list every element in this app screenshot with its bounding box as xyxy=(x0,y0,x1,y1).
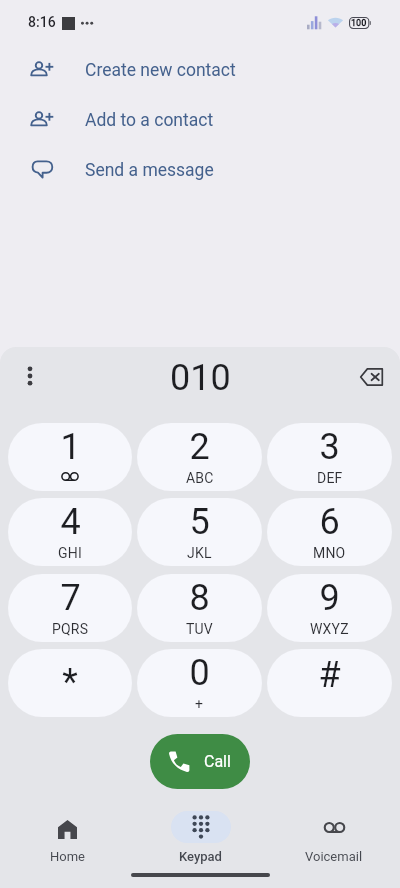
button[interactable]: 6 xyxy=(267,498,392,566)
staticText: 3 xyxy=(319,426,340,468)
button[interactable]: Home xyxy=(0,811,134,864)
staticText: ABC xyxy=(186,470,214,486)
button[interactable]: Voicemail xyxy=(267,811,400,864)
button[interactable]: * xyxy=(8,649,132,717)
button[interactable]: Keypad xyxy=(134,811,267,864)
staticText: MNO xyxy=(313,545,346,561)
button[interactable]: 8 xyxy=(137,574,262,642)
staticText: JKL xyxy=(187,545,212,561)
staticText: 9 xyxy=(319,577,340,619)
staticText: Home xyxy=(50,849,85,864)
staticText: 8:16 xyxy=(28,14,56,30)
staticText: 5 xyxy=(189,501,210,543)
staticText: 100 xyxy=(351,18,367,29)
button[interactable]: More options xyxy=(7,353,52,398)
staticText: Create new contact xyxy=(85,60,236,81)
button[interactable]: 7 xyxy=(8,574,132,642)
staticText: 7 xyxy=(60,577,81,619)
button[interactable]: 0 xyxy=(137,649,262,717)
button[interactable]: 2 xyxy=(137,423,262,491)
staticText: Keypad xyxy=(179,849,222,864)
staticText: Add to a contact xyxy=(85,110,214,131)
staticText: Call xyxy=(204,752,231,771)
staticText: Send a message xyxy=(85,160,214,181)
button[interactable]: 3 xyxy=(267,423,392,491)
staticText: TUV xyxy=(186,621,213,637)
button[interactable]: Call xyxy=(150,734,250,789)
button[interactable]: Send a message xyxy=(0,145,400,195)
button[interactable]: Create new contact xyxy=(0,45,400,95)
staticText: WXYZ xyxy=(310,621,349,637)
staticText: 2 xyxy=(189,426,210,468)
button[interactable]: 5 xyxy=(137,498,262,566)
staticText: 0 xyxy=(189,652,210,694)
staticText: 6 xyxy=(319,501,340,543)
staticText: * xyxy=(62,661,78,703)
staticText: + xyxy=(195,696,204,712)
staticText: 4 xyxy=(60,501,81,543)
button[interactable]: # xyxy=(267,649,392,717)
staticText: # xyxy=(318,654,341,696)
staticText: 1 xyxy=(60,426,81,468)
staticText: 8 xyxy=(189,577,210,619)
staticText: 010 xyxy=(170,357,231,399)
staticText: GHI xyxy=(58,545,82,561)
staticText: Voicemail xyxy=(305,849,363,864)
button[interactable]: Backspace xyxy=(347,353,395,401)
button[interactable]: 1 xyxy=(8,423,132,491)
staticText: DEF xyxy=(317,470,343,486)
button[interactable]: 9 xyxy=(267,574,392,642)
staticText: PQRS xyxy=(52,621,89,637)
button[interactable]: Add to a contact xyxy=(0,95,400,145)
button[interactable]: 4 xyxy=(8,498,132,566)
